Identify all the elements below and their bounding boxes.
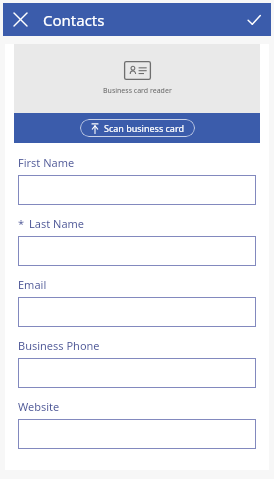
- staticText: *: [18, 216, 25, 231]
- button[interactable]: [18, 236, 256, 266]
- button[interactable]: [18, 358, 256, 388]
- button[interactable]: Close: [3, 3, 37, 36]
- staticText: Business Phone: [18, 338, 100, 353]
- staticText: Business card reader: [103, 86, 172, 96]
- staticText: First Name: [18, 155, 75, 170]
- button[interactable]: [18, 297, 256, 327]
- button[interactable]: [18, 419, 256, 449]
- staticText: Last Name: [29, 216, 85, 231]
- staticText: Website: [18, 399, 60, 414]
- button[interactable]: Scan business card: [80, 119, 195, 137]
- staticText: Email: [18, 277, 47, 292]
- button[interactable]: [18, 175, 256, 205]
- staticText: Contacts: [43, 10, 105, 30]
- staticText: Scan business card: [104, 122, 184, 134]
- button[interactable]: Save: [237, 3, 271, 36]
